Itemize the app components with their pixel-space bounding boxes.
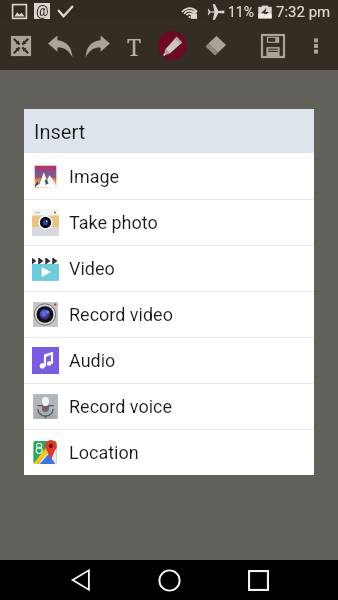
button[interactable]: Image (24, 153, 314, 199)
staticText: Image (69, 166, 120, 187)
button[interactable]: Undo (43, 22, 77, 70)
button[interactable]: Pen (158, 31, 187, 60)
button[interactable]: Save (256, 22, 290, 70)
staticText: Audio (69, 350, 116, 371)
button[interactable]: Recents (236, 560, 280, 600)
button[interactable]: Take photo (24, 200, 314, 245)
button[interactable]: More options (299, 22, 333, 70)
staticText: T (127, 31, 142, 62)
staticText: 11% (228, 4, 254, 20)
staticText: Video (69, 258, 115, 279)
button[interactable]: Record voice (24, 384, 314, 429)
staticText: Record video (69, 304, 173, 325)
staticText: @ (36, 3, 49, 19)
button[interactable]: Home (147, 560, 191, 600)
button[interactable]: Collapse (4, 22, 38, 70)
button[interactable]: Location (24, 430, 314, 475)
button[interactable]: Back (59, 560, 103, 600)
staticText: Insert (34, 120, 86, 143)
staticText: Take photo (69, 212, 158, 233)
staticText: 7:32 pm (276, 3, 331, 21)
staticText: Record voice (69, 396, 173, 417)
button[interactable]: Text (119, 22, 149, 70)
button[interactable]: Video (24, 246, 314, 291)
button[interactable]: Audio (24, 338, 314, 383)
button[interactable]: Eraser (199, 22, 233, 70)
button[interactable]: Record video (24, 292, 314, 337)
staticText: Location (69, 442, 139, 463)
button[interactable]: Redo (81, 22, 115, 70)
